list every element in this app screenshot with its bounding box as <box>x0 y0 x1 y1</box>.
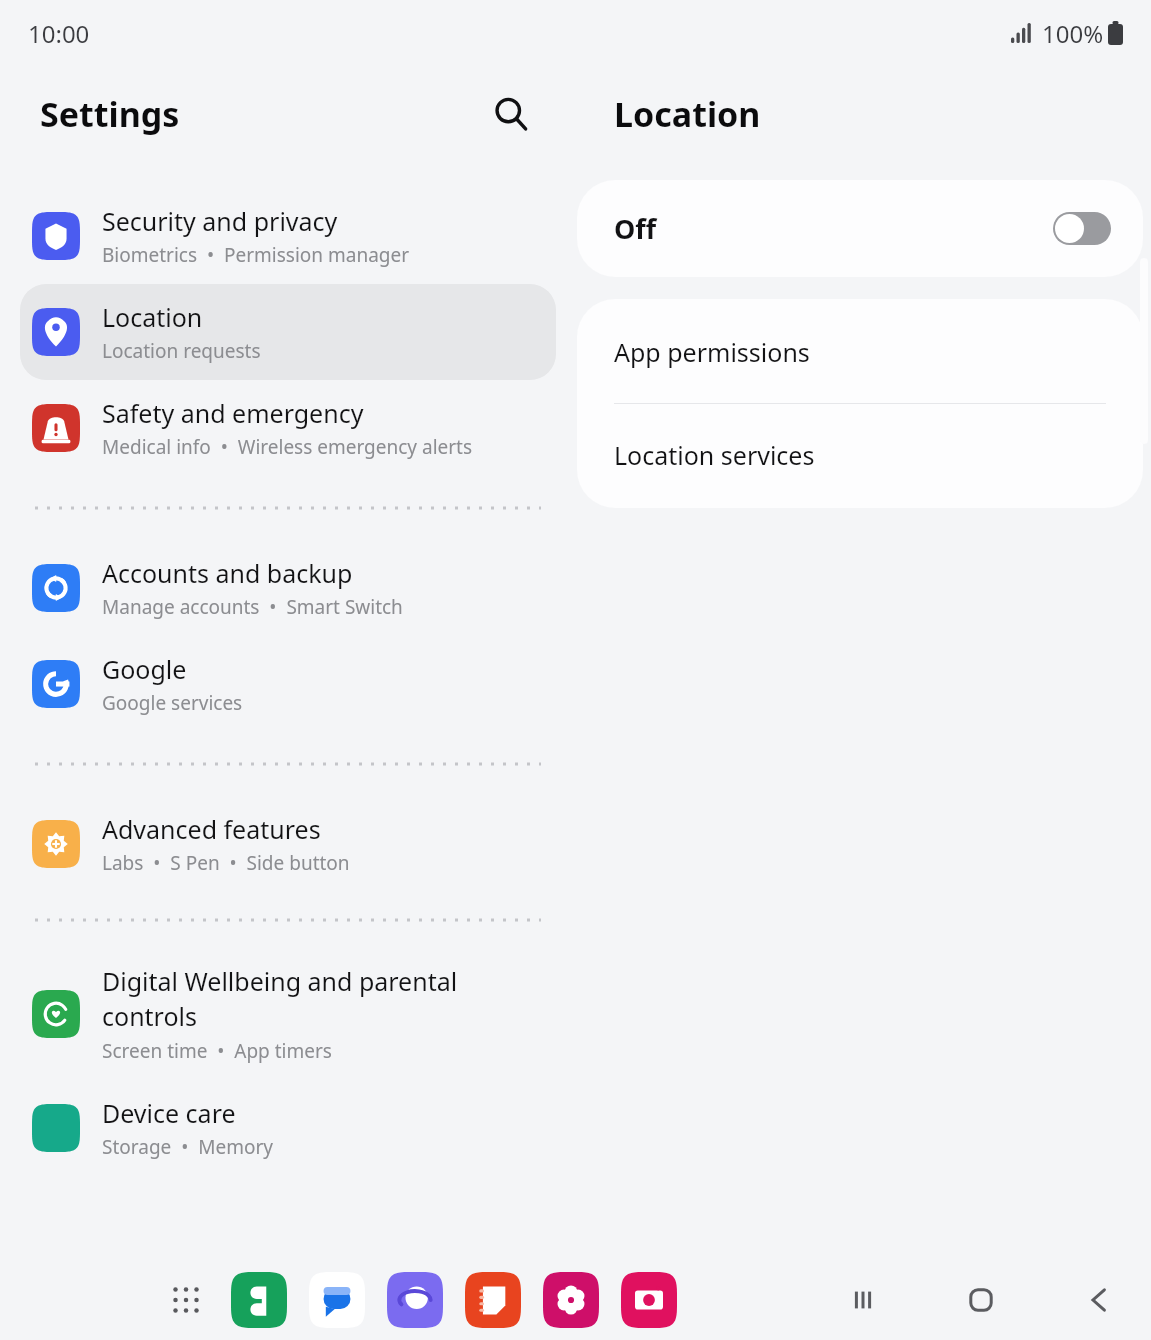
staticText: Google <box>102 652 187 686</box>
button[interactable]: Off <box>577 180 1143 277</box>
staticText: Accounts and backup <box>102 556 353 590</box>
staticText: Location requests <box>102 338 261 364</box>
staticText: Device care <box>102 1096 236 1130</box>
button[interactable]: App permissions <box>577 299 1143 403</box>
button[interactable]: Digital Wellbeing and parental controls <box>20 948 556 1080</box>
button[interactable]: Security and privacy <box>20 188 556 284</box>
staticText: Digital Wellbeing and parental controls <box>102 964 458 1034</box>
button[interactable]: camera <box>620 1271 678 1329</box>
button[interactable]: Google <box>20 636 556 732</box>
button[interactable]: Back <box>1069 1270 1129 1330</box>
button[interactable]: phone <box>230 1271 288 1329</box>
button[interactable]: Recents <box>833 1270 893 1330</box>
staticText: Security and privacy <box>102 204 338 238</box>
staticText: Medical info • Wireless emergency alerts <box>102 434 473 460</box>
button[interactable]: Search <box>484 87 538 141</box>
button[interactable]: Accounts and backup <box>20 540 556 636</box>
staticText: Location <box>614 91 761 137</box>
staticText: Safety and emergency <box>102 396 364 430</box>
staticText: Screen time • App timers <box>102 1038 332 1064</box>
button[interactable]: internet <box>386 1271 444 1329</box>
staticText: Location <box>102 300 203 334</box>
button[interactable]: Home <box>951 1270 1011 1330</box>
staticText: Manage accounts • Smart Switch <box>102 594 403 620</box>
staticText: Storage • Memory <box>102 1134 273 1160</box>
button[interactable]: gallery <box>542 1271 600 1329</box>
staticText: Settings <box>40 91 180 137</box>
button[interactable]: Advanced features <box>20 796 556 892</box>
button[interactable]: Device care <box>20 1080 556 1176</box>
button[interactable]: notes <box>464 1271 522 1329</box>
staticText: App permissions <box>614 335 810 369</box>
staticText: 100% <box>1042 17 1104 50</box>
staticText: Off <box>614 210 657 247</box>
button[interactable]: Safety and emergency <box>20 380 556 476</box>
staticText: Location services <box>614 438 815 472</box>
button[interactable]: messages <box>308 1271 366 1329</box>
staticText: Advanced features <box>102 812 321 846</box>
staticText: 10:00 <box>28 17 90 50</box>
staticText: Biometrics • Permission manager <box>102 242 410 268</box>
button[interactable]: Apps <box>160 1274 212 1326</box>
staticText: Google services <box>102 690 243 716</box>
button[interactable]: Location <box>20 284 556 380</box>
button[interactable]: Location services <box>577 404 1143 508</box>
staticText: Labs • S Pen • Side button <box>102 850 350 876</box>
